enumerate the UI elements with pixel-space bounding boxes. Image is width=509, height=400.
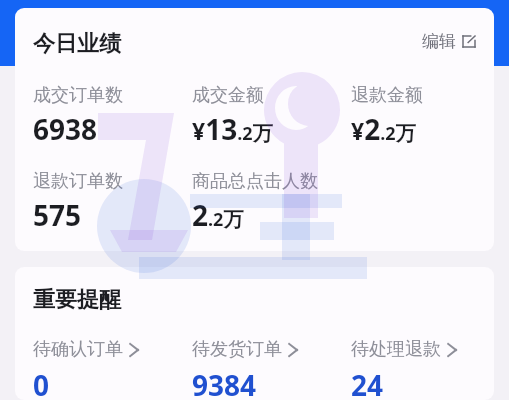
staticText: 575 [33,196,82,234]
button[interactable]: 编辑 [422,31,476,52]
staticText: 编辑 [422,31,456,52]
staticText: 退款金额 [351,84,423,107]
staticText: 待处理退款 [351,338,441,361]
other: Edit [462,35,476,48]
staticText: 24 [351,366,384,400]
staticText: 6938 [33,110,98,148]
staticText: 待确认订单 [33,338,123,361]
button[interactable]: 待确认订单 [33,338,192,400]
staticText: 9384 [192,366,257,400]
staticText: ¥13.2万 [192,110,273,148]
staticText: 今日业绩 [33,30,121,58]
staticText: 退款订单数 [33,170,123,193]
staticText: 待发货订单 [192,338,282,361]
button[interactable]: 待处理退款 [351,338,494,400]
staticText: 重要提醒 [33,286,121,314]
button[interactable]: 待发货订单 [192,338,351,400]
staticText: ¥2.2万 [351,110,416,148]
staticText: 2.2万 [192,196,244,234]
staticText: 0 [33,366,50,400]
staticText: 成交金额 [192,84,264,107]
staticText: 商品总点击人数 [192,170,318,193]
staticText: 成交订单数 [33,84,123,107]
